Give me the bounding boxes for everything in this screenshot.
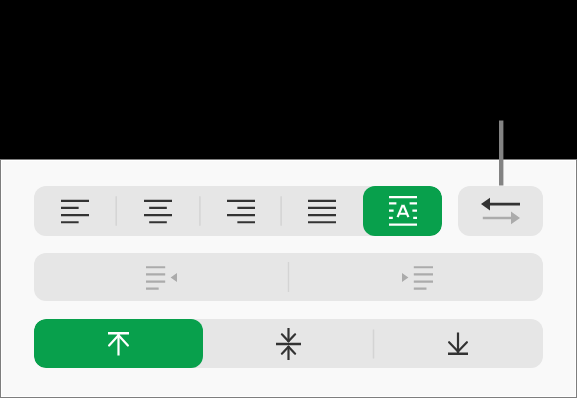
button[interactable]: Align top (34, 319, 203, 368)
button[interactable]: Align bottom (373, 319, 543, 368)
button[interactable]: Align center (116, 186, 200, 236)
button[interactable]: Justify (281, 186, 363, 236)
button[interactable]: Align right (200, 186, 281, 236)
button[interactable]: Align left (34, 186, 116, 236)
button[interactable]: Decrease indent (34, 253, 288, 301)
button[interactable]: Text direction (363, 186, 442, 236)
button[interactable]: Align middle (203, 319, 373, 368)
button[interactable]: Increase indent (288, 253, 543, 301)
button[interactable]: Swap text direction (458, 186, 543, 236)
